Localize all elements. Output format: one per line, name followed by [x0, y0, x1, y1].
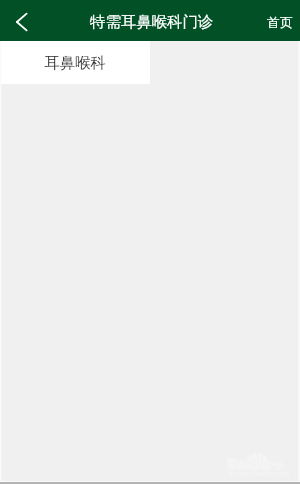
staticText: 特需耳鼻喉科门诊 [90, 12, 214, 31]
button[interactable]: Back [0, 0, 44, 41]
staticText: 首页 [267, 14, 293, 30]
button[interactable]: 耳鼻喉科 [0, 41, 150, 84]
button[interactable]: 首页 [257, 0, 300, 41]
staticText: 耳鼻喉科 [44, 53, 106, 72]
